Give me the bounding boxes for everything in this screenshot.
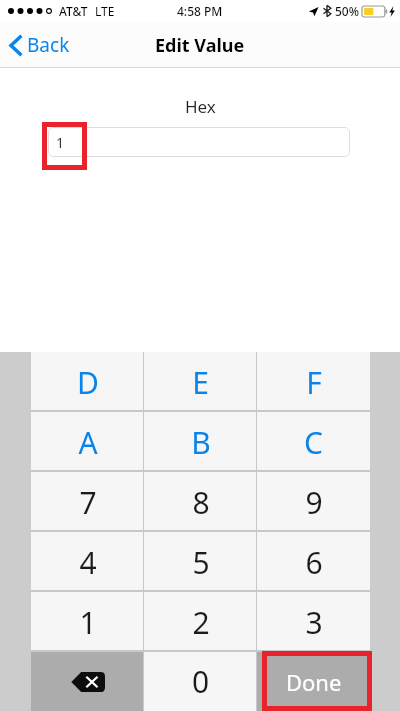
button[interactable]: 8 [144, 472, 257, 532]
button[interactable]: Backspace [31, 652, 144, 711]
button[interactable]: 3 [257, 592, 370, 652]
button[interactable]: E [144, 352, 257, 412]
staticText: D [77, 362, 99, 403]
button[interactable]: 6 [257, 532, 370, 592]
staticText: 1 [56, 133, 65, 152]
staticText: AT&T [59, 3, 88, 19]
staticText: E [192, 362, 209, 403]
button[interactable]: 2 [144, 592, 257, 652]
staticText: Back [27, 32, 70, 58]
staticText: LTE [95, 3, 115, 19]
button[interactable]: 1 [31, 592, 144, 652]
staticText: 1 [79, 602, 97, 643]
staticText: 8 [192, 482, 210, 523]
staticText: 5 [192, 542, 210, 583]
staticText: 3 [305, 602, 323, 643]
button[interactable]: C [257, 412, 370, 472]
staticText: 50% [335, 3, 359, 19]
staticText: C [304, 422, 323, 463]
button[interactable]: B [144, 412, 257, 472]
staticText: 9 [305, 482, 323, 523]
button[interactable]: D [31, 352, 144, 412]
button[interactable]: F [257, 352, 370, 412]
staticText: F [306, 362, 322, 403]
button[interactable]: 7 [31, 472, 144, 532]
button[interactable]: 0 [144, 652, 257, 711]
staticText: 7 [79, 482, 97, 523]
button[interactable]: Done [257, 652, 370, 711]
staticText: 6 [305, 542, 323, 583]
staticText: Edit Value [155, 33, 245, 58]
staticText: 0 [192, 661, 210, 702]
button[interactable]: 9 [257, 472, 370, 532]
staticText: Hex [185, 95, 216, 118]
button[interactable]: A [31, 412, 144, 472]
button[interactable]: 1 [48, 127, 350, 157]
staticText: B [191, 422, 211, 463]
staticText: 2 [192, 602, 210, 643]
staticText: 4:58 PM [177, 3, 223, 19]
button[interactable]: 5 [144, 532, 257, 592]
staticText: A [78, 422, 98, 463]
button[interactable]: 4 [31, 532, 144, 592]
staticText: Done [286, 667, 342, 697]
button[interactable]: Back [0, 26, 82, 64]
staticText: 4 [79, 542, 97, 583]
